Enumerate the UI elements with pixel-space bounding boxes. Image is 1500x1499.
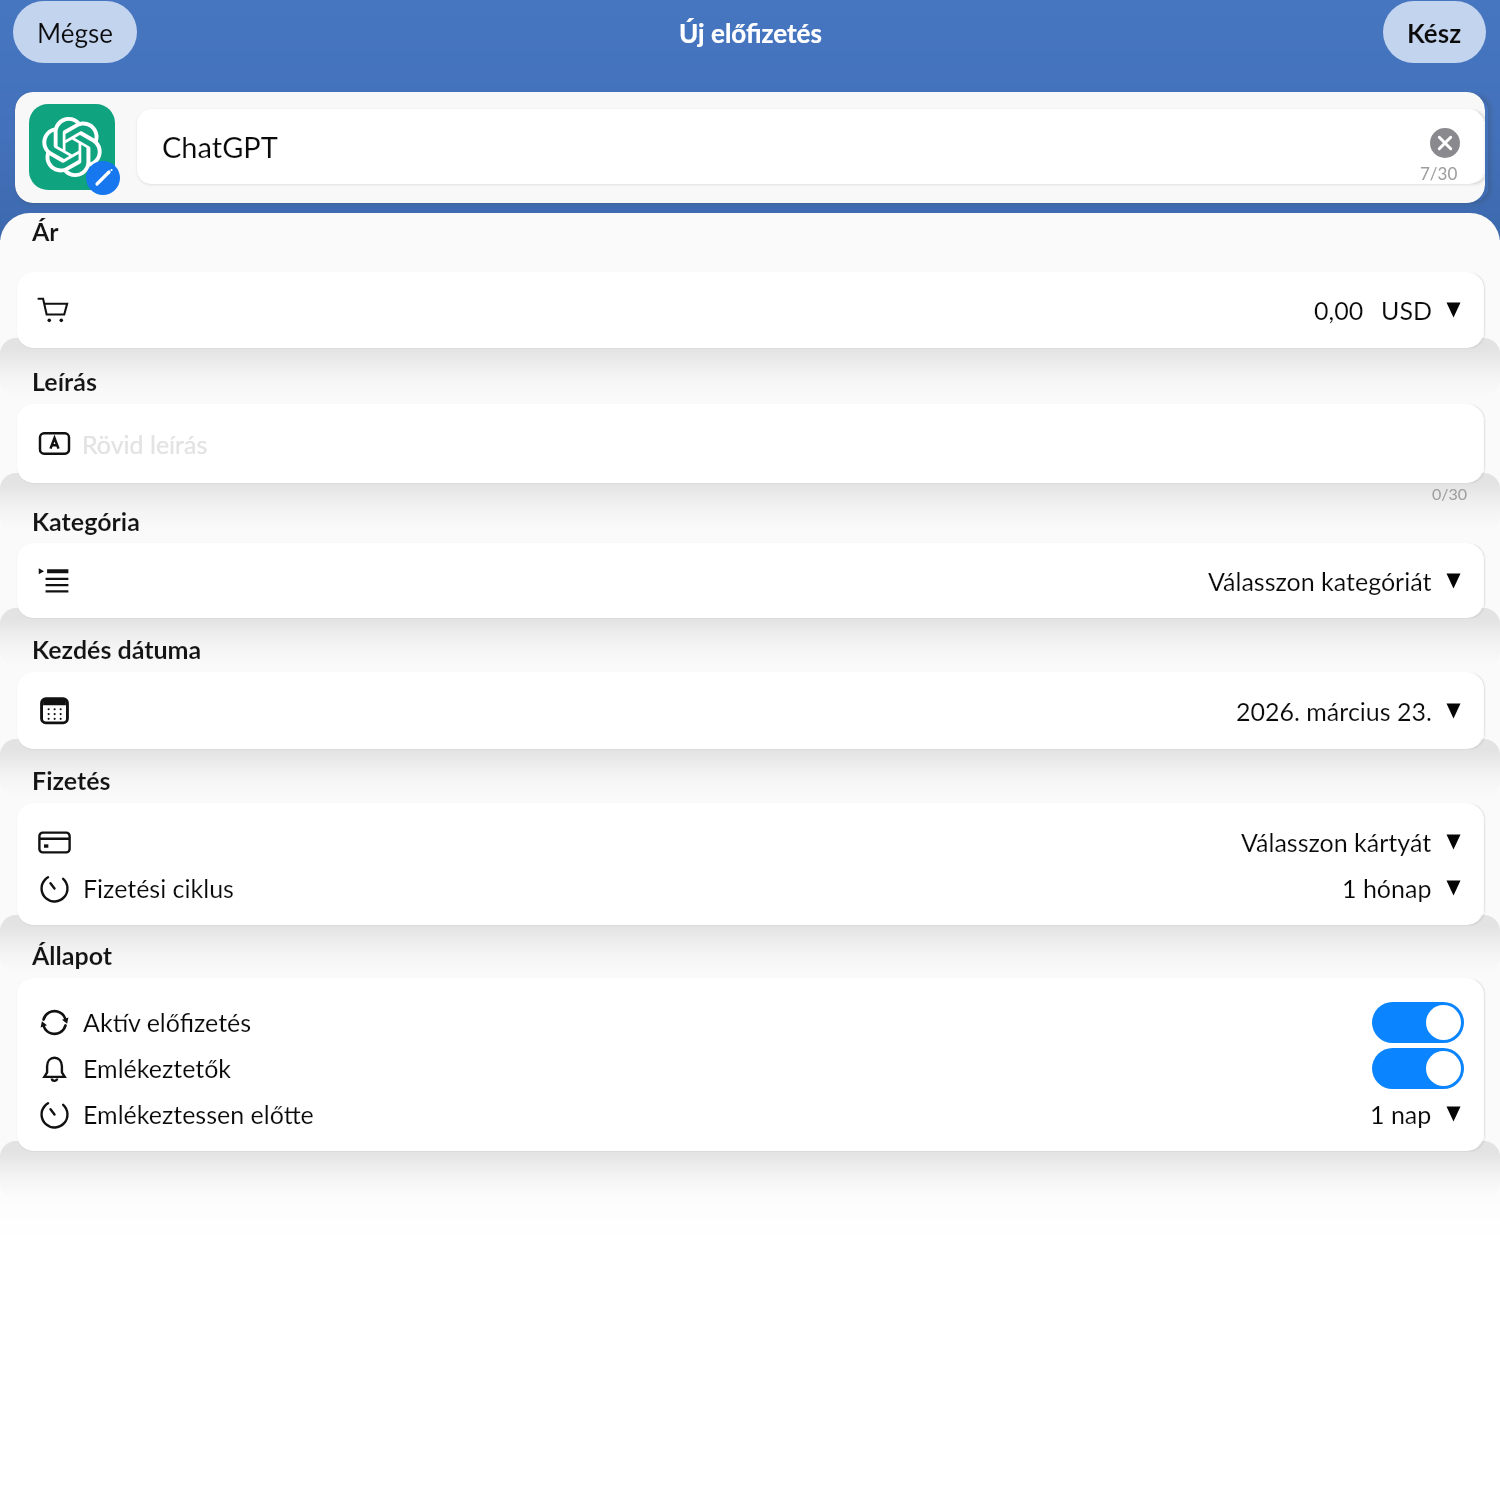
staticText: Leírás <box>32 366 1500 396</box>
staticText: Kategória <box>32 506 1500 536</box>
staticText: Ár <box>32 216 1500 246</box>
button[interactable]: Mégse <box>13 1 137 63</box>
staticText: 7/30 <box>1420 163 1458 183</box>
button[interactable]: 0,00 <box>17 272 1483 348</box>
button[interactable]: App icon <box>29 104 115 190</box>
staticText: USD <box>1381 295 1432 325</box>
staticText: Kész <box>1407 17 1462 48</box>
staticText: Fizetés <box>32 765 1500 795</box>
button[interactable]: Toggle <box>1372 1002 1464 1043</box>
button[interactable]: Toggle <box>1372 1048 1464 1089</box>
button[interactable]: Rövid leírás <box>17 404 1483 483</box>
staticText: 1 hónap <box>1342 873 1432 903</box>
button[interactable]: Válasszon kategóriát <box>17 543 1483 618</box>
button[interactable]: 2026. március 23. <box>17 672 1483 749</box>
staticText: ChatGPT <box>162 129 278 164</box>
staticText: 2026. március 23. <box>1236 696 1432 726</box>
staticText: 0/30 <box>1432 484 1468 503</box>
staticText: Rövid leírás <box>82 429 208 459</box>
staticText: Kezdés dátuma <box>32 634 1500 664</box>
staticText: Állapot <box>32 940 1500 970</box>
button[interactable]: Emlékeztessen előtte <box>17 1091 1483 1137</box>
button[interactable]: Emlékeztetők <box>17 1045 1483 1091</box>
staticText: Válasszon kártyát <box>1241 827 1432 857</box>
staticText: Fizetési ciklus <box>83 873 234 903</box>
staticText: Válasszon kategóriát <box>1208 566 1432 596</box>
button[interactable]: Kész <box>1383 1 1486 63</box>
staticText: 0,00 <box>1314 295 1364 325</box>
button[interactable]: ChatGPT <box>137 109 1483 184</box>
staticText: Új előfizetés <box>679 17 822 48</box>
staticText: Mégse <box>37 17 113 48</box>
button[interactable]: Válasszon kártyát <box>17 819 1483 865</box>
button[interactable]: Edit icon <box>86 161 120 195</box>
staticText: Emlékeztetők <box>83 1053 232 1083</box>
staticText: 1 nap <box>1370 1099 1432 1129</box>
button[interactable]: Clear text <box>1430 128 1460 158</box>
button[interactable]: Fizetési ciklus <box>17 865 1483 911</box>
staticText: Aktív előfizetés <box>83 1007 252 1037</box>
staticText: Emlékeztessen előtte <box>83 1099 314 1129</box>
button[interactable]: Aktív előfizetés <box>17 999 1483 1045</box>
